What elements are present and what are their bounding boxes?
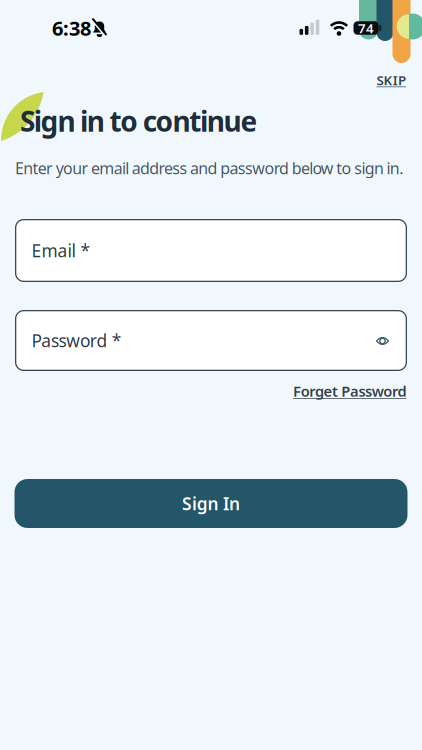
staticText: Forget Password [293,381,406,401]
staticText: Sign In [182,492,240,515]
staticText: Password * [31,329,122,352]
button[interactable]: Forget Password [293,381,406,401]
staticText: 74 [358,19,374,37]
staticText: Sign in to continue [20,102,257,140]
button[interactable]: Password * [15,310,407,371]
button[interactable]: Show password [367,326,397,356]
button[interactable]: SKIP [376,71,406,89]
button[interactable]: Sign In [14,479,407,528]
staticText: Enter your email address and password be… [15,157,403,179]
staticText: SKIP [376,71,406,89]
button[interactable]: Email * [15,219,407,282]
staticText: Email * [31,239,90,262]
staticText: 6:38 [52,15,91,41]
